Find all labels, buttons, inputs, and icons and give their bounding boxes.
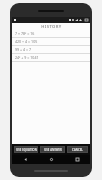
staticText: HISTORY: [41, 24, 62, 30]
button[interactable]: CANCEL: [67, 146, 88, 153]
button[interactable]: 99 + 4 = 7: [12, 46, 90, 54]
button[interactable]: USE ANSWER: [40, 146, 65, 153]
button[interactable]: Home: [38, 155, 64, 164]
button[interactable]: Back: [12, 155, 38, 164]
button[interactable]: USE EQUATION: [14, 146, 38, 153]
staticText: 420 ÷ 4 = 105: [15, 39, 38, 44]
button[interactable]: Recent apps: [64, 155, 90, 164]
button[interactable]: 7 × 78² = 16: [12, 30, 90, 38]
button[interactable]: 420 ÷ 4 = 105: [12, 38, 90, 46]
staticText: 7 × 78² = 16: [15, 31, 35, 36]
staticText: USE ANSWER: [44, 148, 62, 152]
button[interactable]: 24² + 9 = 1041: [12, 54, 90, 62]
staticText: USE EQUATION: [16, 148, 37, 152]
staticText: 24² + 9 = 1041: [15, 55, 39, 60]
staticText: CANCEL: [72, 148, 83, 152]
staticText: 99 + 4 = 7: [15, 47, 32, 52]
